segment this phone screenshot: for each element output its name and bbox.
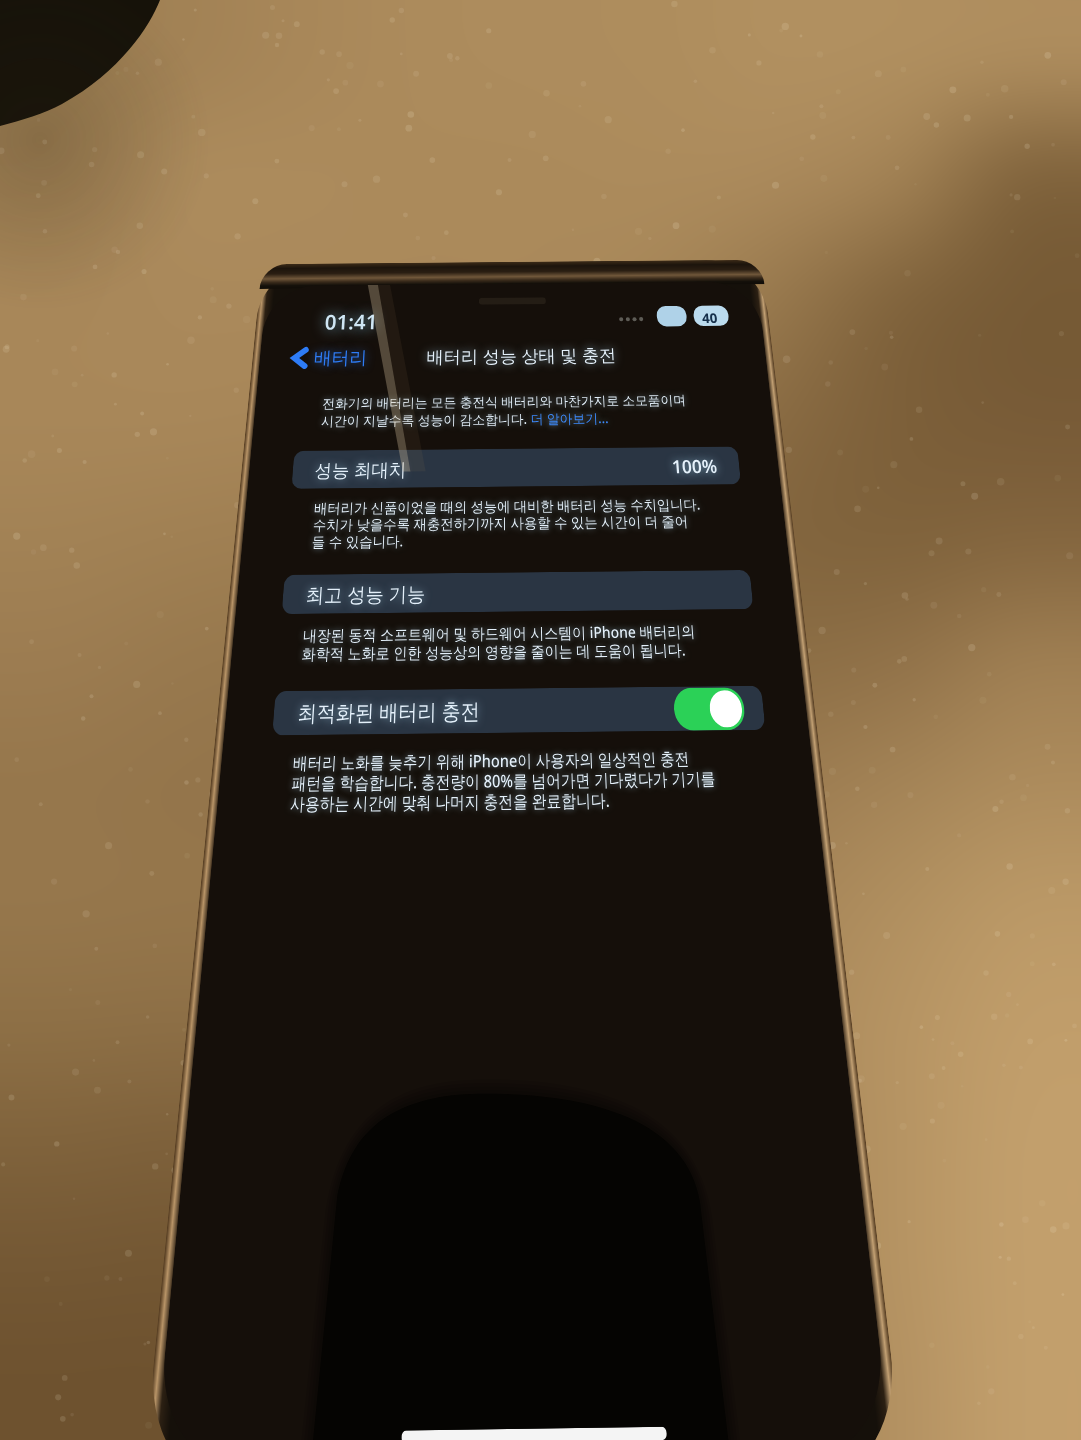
button[interactable]: 성능 최대치: [291, 446, 741, 489]
staticText: 100%: [671, 453, 719, 479]
staticText: 배터리 노화를 늦추기 위해 iPhone이 사용자의 일상적인 충전 패턴을 …: [289, 746, 718, 815]
staticText: 40: [701, 309, 718, 327]
staticText: 최적화된 배터리 충전: [297, 696, 481, 728]
staticText: 배터리: [313, 347, 368, 369]
staticText: 01:41: [324, 308, 379, 336]
staticText: 최고 성능 기능: [305, 580, 426, 609]
staticText: 내장된 동적 소프트웨어 및 하드웨어 시스템이 iPhone 배터리의 화학적…: [301, 620, 698, 664]
button[interactable]: 배터리: [290, 345, 361, 371]
staticText: 배터리가 신품이었을 때의 성능에 대비한 배터리 성능 수치입니다. 수치가 …: [311, 494, 705, 551]
button[interactable]: 더 알아보기...: [530, 409, 609, 427]
staticText: 성능 최대치: [314, 457, 408, 483]
button[interactable]: 최적화된 배터리 충전: [272, 686, 766, 735]
staticText: 전화기의 배터리는 모든 충전식 배터리와 마찬가지로 소모품이며: [322, 390, 687, 411]
button[interactable]: 최적화된 배터리 충전 켬: [673, 687, 746, 731]
button[interactable]: 최고 성능 기능: [281, 570, 753, 614]
staticText: 시간이 지날수록 성능이 감소합니다.: [321, 409, 531, 429]
staticText: 배터리 성능 상태 및 충전: [426, 342, 617, 368]
